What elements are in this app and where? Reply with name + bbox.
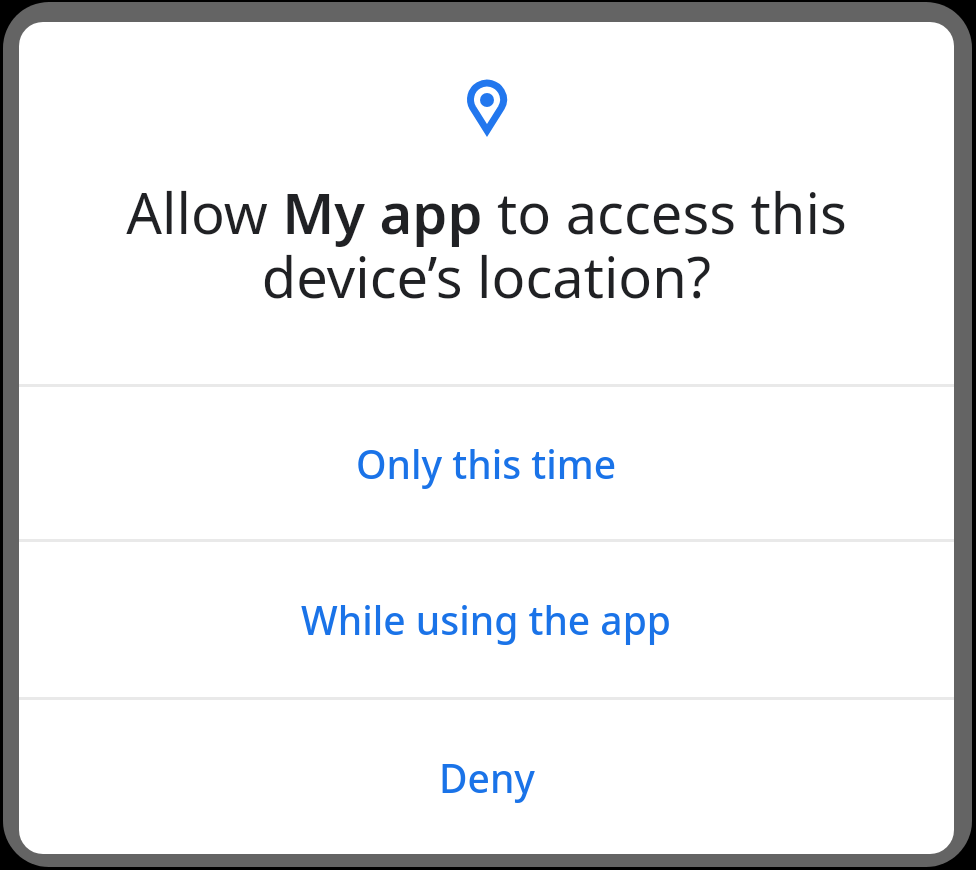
staticText: Only this time [356, 437, 617, 490]
button[interactable]: While using the app [19, 542, 954, 697]
staticText: While using the app [301, 593, 672, 646]
staticText: Deny [439, 751, 535, 804]
staticText: Allow My app to access this device’s loc… [19, 174, 954, 315]
button[interactable]: Deny [19, 700, 954, 854]
button[interactable]: Only this time [19, 387, 954, 539]
